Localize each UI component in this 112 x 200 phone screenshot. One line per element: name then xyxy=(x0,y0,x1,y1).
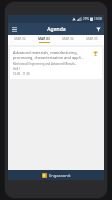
staticText: 10:00 - 11:30 xyxy=(13,72,30,76)
button[interactable]: MAR 04 xyxy=(56,35,80,45)
staticText: MAR 05 xyxy=(86,37,98,41)
staticText: Hall 1 xyxy=(13,67,21,71)
button[interactable]: Open navigation menu xyxy=(10,25,18,33)
staticText: Advanced materials, manufacturing, proce… xyxy=(13,50,84,60)
staticText: Engazoonit xyxy=(49,173,71,178)
button[interactable]: Filter agenda xyxy=(94,25,102,33)
button[interactable]: MAR 03 xyxy=(32,35,56,45)
staticText: MAR 02 xyxy=(14,37,26,41)
button[interactable]: MAR 05 xyxy=(80,35,104,45)
staticText: MAR 04 xyxy=(62,37,74,41)
button[interactable]: MAR 02 xyxy=(8,35,32,45)
staticText: 29% xyxy=(83,17,89,21)
staticText: 13:58 xyxy=(94,17,102,21)
button[interactable]: Engazoonit xyxy=(8,170,104,180)
button[interactable]: Add to favourites xyxy=(92,50,99,57)
staticText: Mechanical Engineering and Advanced Manu… xyxy=(13,62,77,66)
staticText: Agenda xyxy=(47,26,66,33)
button[interactable]: Advanced materials, manufacturing, proce… xyxy=(10,47,102,79)
staticText: MAR 03 xyxy=(38,37,50,41)
